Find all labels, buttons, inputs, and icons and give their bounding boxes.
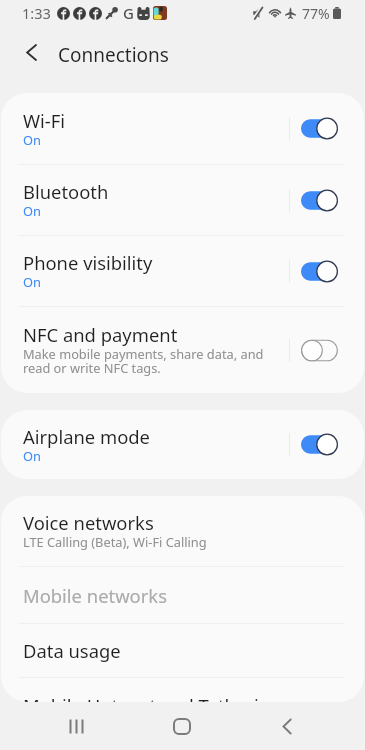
button[interactable]: Wi-Fi [1, 93, 364, 164]
staticText: Bluetooth [23, 179, 109, 204]
button[interactable]: Phone visibility [1, 236, 364, 306]
button[interactable]: Home [129, 703, 234, 750]
staticText: Airplane mode [23, 424, 150, 449]
button[interactable]: Back [234, 703, 339, 750]
staticText: On [23, 447, 41, 464]
staticText: Connections [58, 42, 169, 68]
staticText: Wi-Fi [23, 108, 66, 133]
button[interactable]: Turn off [301, 260, 338, 283]
button[interactable]: Mobile networks [1, 567, 364, 623]
staticText: G [123, 3, 134, 23]
button[interactable]: Turn on [301, 339, 338, 362]
staticText: 77% [302, 4, 330, 23]
staticText: On [23, 273, 41, 290]
button[interactable]: Turn off [301, 189, 338, 212]
staticText: 1:33 [22, 3, 51, 23]
staticText: Data usage [23, 638, 121, 663]
button[interactable]: Turn off [301, 433, 338, 456]
staticText: Mobile networks [23, 583, 167, 608]
staticText: On [23, 131, 41, 148]
staticText: LTE Calling (Beta), Wi-Fi Calling [23, 533, 207, 550]
staticText: Voice networks [23, 510, 154, 535]
staticText: NFC and payment [23, 322, 178, 347]
button[interactable]: Airplane mode [1, 410, 364, 479]
staticText: Phone visibility [23, 250, 153, 275]
staticText: Mobile Hotspot and Tethering [23, 693, 282, 702]
button[interactable]: Turn off [301, 117, 338, 140]
staticText: Make mobile payments, share data, and re… [23, 345, 264, 377]
button[interactable]: Voice networks [1, 496, 364, 566]
button[interactable]: Data usage [1, 624, 364, 677]
button[interactable]: NFC and payment [1, 307, 364, 393]
button[interactable]: Navigate up [0, 26, 56, 74]
button[interactable]: Bluetooth [1, 165, 364, 235]
staticText: On [23, 202, 41, 219]
button[interactable]: Mobile Hotspot and Tethering [1, 678, 364, 702]
button[interactable]: Recent apps [24, 703, 129, 750]
